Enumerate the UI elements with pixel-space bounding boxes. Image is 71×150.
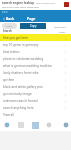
button[interactable]: Copy [20, 23, 46, 29]
button[interactable]: Page [27, 16, 36, 21]
staticText: search anything here [3, 106, 34, 110]
button[interactable]: Profile [60, 121, 71, 129]
button[interactable]: Back [1, 16, 16, 21]
button[interactable]: go then [0, 76, 71, 83]
button[interactable]: top 10 gems in germany [0, 41, 71, 48]
staticText: Views [59, 30, 66, 33]
staticText: best videos [3, 50, 20, 54]
staticText: first you got here [3, 36, 29, 40]
button[interactable]: what is german wedding tradition [0, 62, 71, 69]
staticText: how to use a web search engine tools [2, 6, 39, 9]
button[interactable]: Videos [28, 121, 42, 129]
button[interactable]: best videos [0, 48, 71, 55]
button[interactable]: first you got here [0, 34, 71, 41]
staticText: go tron body image [3, 92, 32, 96]
staticText: search engine lookup [2, 1, 35, 5]
button[interactable]: News [42, 121, 56, 129]
staticText: ⋮ [64, 100, 67, 103]
staticText: unknown search frontal [3, 99, 38, 103]
staticText: ⋮ [64, 107, 67, 110]
staticText: ⋮ [64, 72, 67, 75]
staticText: search engine tools . documentation [36, 2, 71, 5]
button[interactable]: unknown search frontal [0, 97, 71, 104]
staticText: ⋮ [64, 65, 67, 68]
button[interactable]: Images [13, 121, 28, 129]
button[interactable]: Search [0, 121, 13, 129]
staticText: black and white gallery pics [3, 85, 43, 89]
staticText: Search [3, 29, 12, 33]
button[interactable]: Account [64, 2, 69, 7]
staticText: ⋮ [64, 86, 67, 89]
staticText: what is german wedding tradition [3, 64, 53, 68]
staticText: lively chatters from tribe [3, 71, 39, 75]
staticText: query [6, 25, 13, 28]
staticText: ⋮ [64, 79, 67, 82]
button[interactable]: go tron body image [0, 90, 71, 97]
staticText: go then [3, 78, 15, 82]
staticText: View all [3, 113, 14, 117]
staticText: Back [6, 16, 15, 21]
button[interactable]: lively chatters from tribe [0, 69, 71, 76]
staticText: ⋮ [64, 37, 67, 40]
staticText: top 10 gems in germany [3, 43, 39, 47]
staticText: Page [27, 16, 36, 21]
button[interactable]: photo to celebrate wedding [0, 55, 71, 62]
button[interactable]: search anything here [0, 104, 71, 111]
button[interactable]: View all [0, 111, 71, 118]
button[interactable]: More tools [52, 23, 68, 29]
staticText: ⋮ [64, 58, 67, 61]
staticText: More tools [54, 25, 67, 28]
staticText: Copy [30, 24, 37, 28]
staticText: photo to celebrate wedding [3, 57, 44, 61]
button[interactable]: query [2, 23, 17, 29]
button[interactable]: black and white gallery pics [0, 83, 71, 90]
staticText: ⋮ [64, 93, 67, 96]
staticText: ⋮ [64, 44, 67, 47]
staticText: ⋮ [64, 51, 67, 54]
